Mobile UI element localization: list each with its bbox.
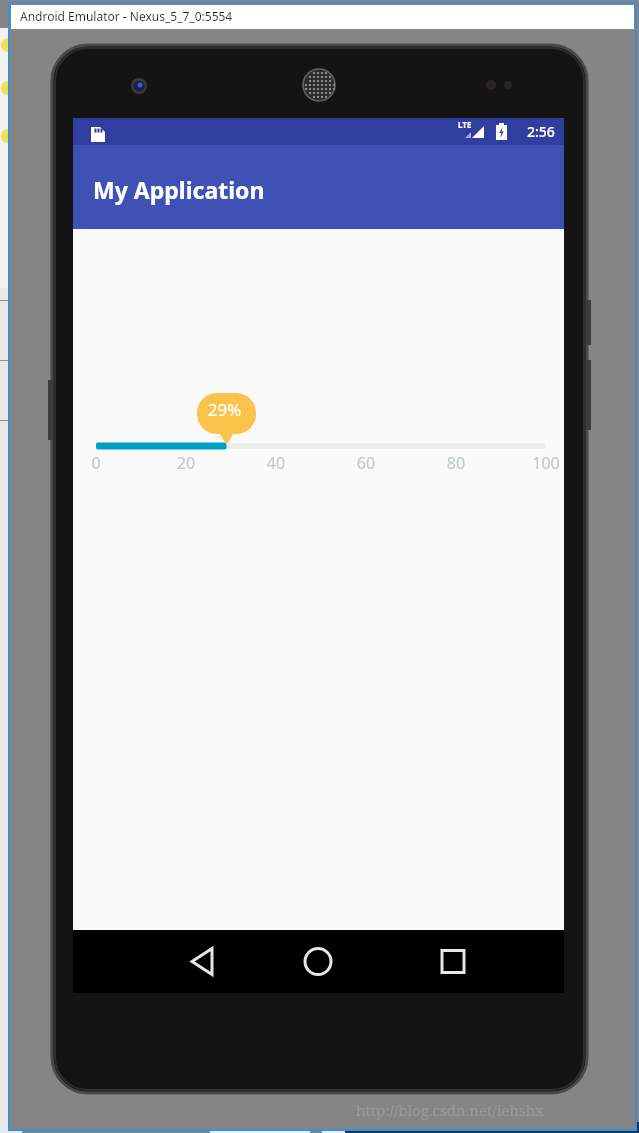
staticText: 40 [256,452,296,474]
staticText: 60 [346,452,386,474]
button[interactable]: Back [148,930,258,993]
button[interactable]: Home [263,930,373,993]
staticText: 100 [526,452,566,474]
staticText: http://blog.csdn.net/iehshx [356,1100,544,1120]
staticText: 29% [195,398,254,420]
staticText: 80 [436,452,476,474]
staticText: 0 [76,452,116,474]
staticText: LTE [458,119,472,130]
staticText: My Application [93,174,265,205]
staticText: 20 [166,452,206,474]
staticText: Android Emulator - Nexus_5_7_0:5554 [20,8,233,24]
button[interactable]: Seek bar, 29 percent [85,379,551,479]
button[interactable]: Recent apps [398,930,508,993]
staticText: 2:56 [527,122,555,141]
